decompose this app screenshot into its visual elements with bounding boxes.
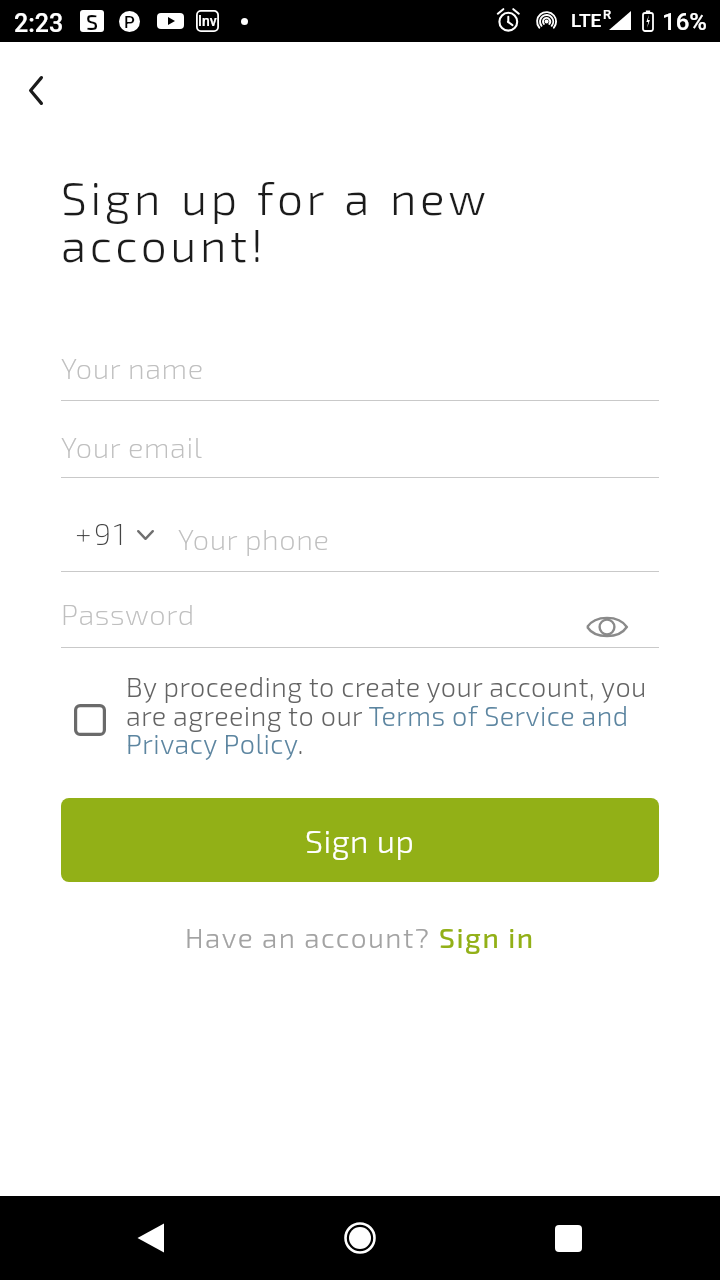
button[interactable]: Back [116, 1204, 184, 1272]
staticText: Your phone [178, 521, 330, 556]
button[interactable]: Agree to terms [72, 702, 107, 737]
staticText: Inv [198, 13, 217, 29]
button[interactable]: Home [326, 1204, 394, 1272]
staticText: LTE [571, 9, 602, 31]
staticText: Sign up [305, 821, 415, 859]
staticText: Password [61, 596, 195, 631]
staticText: P [124, 12, 135, 32]
button[interactable]: +91 [61, 515, 154, 551]
button[interactable]: Recent apps [534, 1204, 602, 1272]
button[interactable]: Back [0, 54, 72, 126]
staticText: Your email [61, 429, 203, 464]
button[interactable]: Show password [581, 601, 633, 653]
staticText: By proceeding to create your account, yo… [126, 670, 659, 759]
staticText: 16% [662, 8, 707, 36]
staticText: +91 [75, 515, 128, 551]
staticText: R [603, 7, 612, 22]
staticText: Sign in [439, 920, 535, 954]
staticText: 2:23 [14, 9, 64, 38]
staticText: Sign up for a new account! [61, 169, 533, 271]
staticText: S [86, 10, 98, 31]
staticText: Have an account? [185, 920, 439, 954]
button[interactable]: Sign in [439, 920, 535, 954]
staticText: Your name [61, 350, 204, 385]
button[interactable]: Sign up [61, 798, 659, 882]
